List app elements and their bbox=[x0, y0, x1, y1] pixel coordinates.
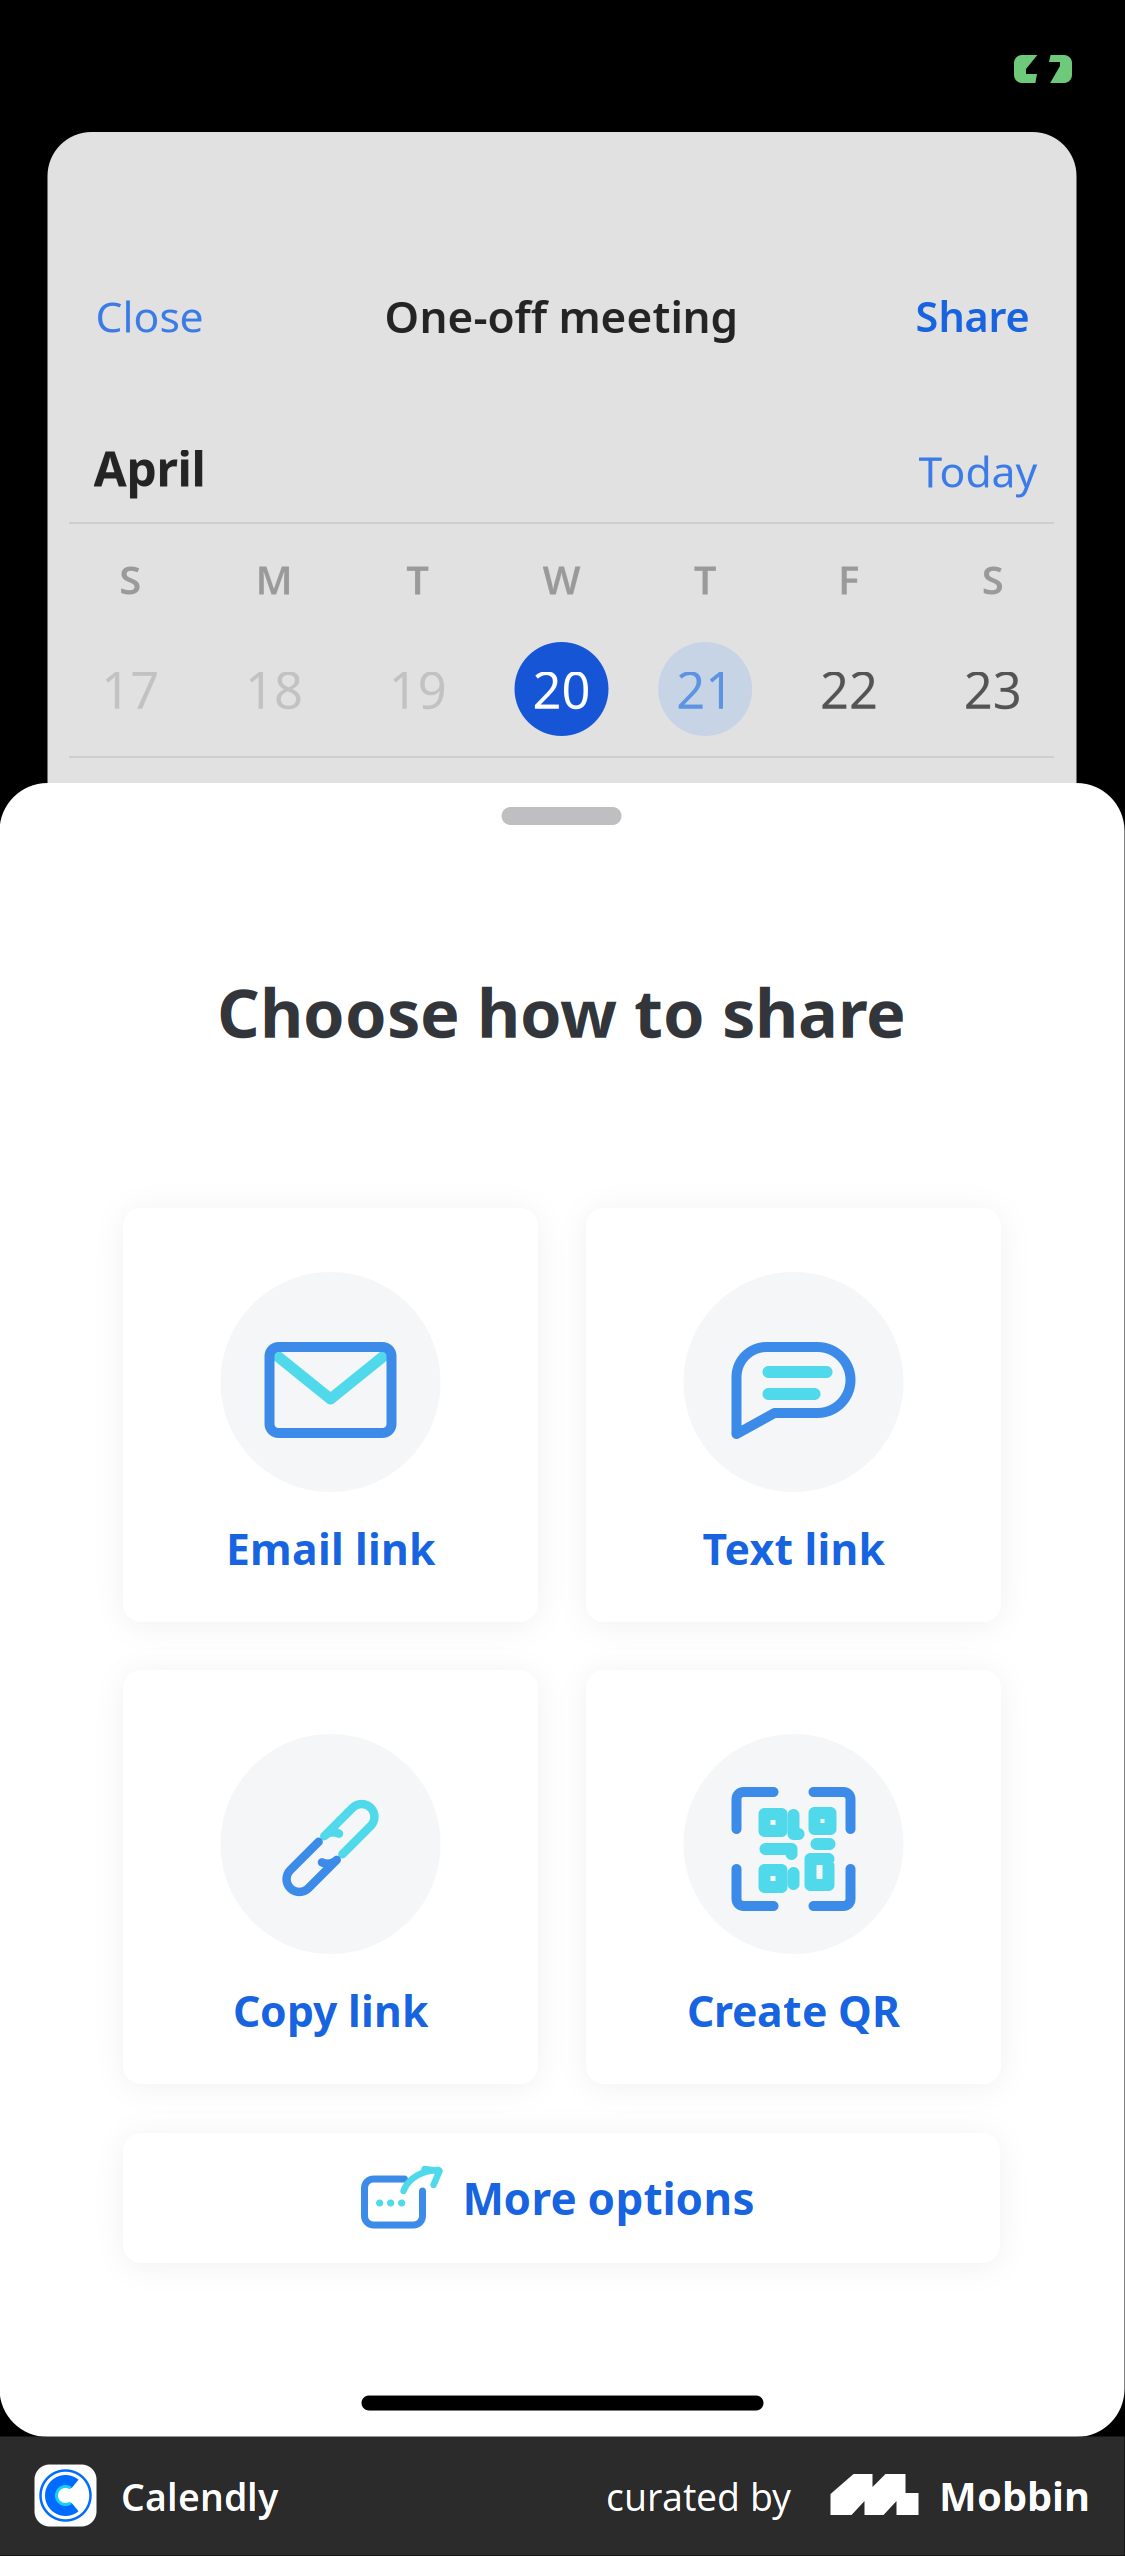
staticText: 20 bbox=[532, 655, 590, 723]
staticText: Choose how to share bbox=[217, 968, 906, 1056]
staticText: April bbox=[93, 436, 205, 500]
button[interactable]: Email link bbox=[123, 1208, 538, 1622]
button[interactable]: 19 bbox=[346, 639, 490, 739]
staticText: S bbox=[119, 552, 141, 605]
button[interactable]: Share bbox=[849, 281, 1029, 351]
button[interactable]: 18 bbox=[202, 639, 346, 739]
button[interactable]: 22 bbox=[777, 639, 921, 739]
staticText: Copy link bbox=[233, 1982, 428, 2039]
button[interactable]: Copy link bbox=[123, 1670, 538, 2084]
staticText: Create QR bbox=[687, 1982, 900, 2039]
staticText: Close bbox=[95, 288, 203, 344]
staticText: 17 bbox=[101, 655, 159, 723]
staticText: One-off meeting bbox=[384, 287, 738, 345]
staticText: curated by bbox=[606, 2472, 791, 2521]
staticText: S bbox=[982, 552, 1004, 605]
staticText: T bbox=[406, 552, 429, 605]
button[interactable]: 23 bbox=[921, 639, 1064, 739]
staticText: 23 bbox=[964, 655, 1022, 723]
staticText: More options bbox=[462, 2169, 754, 2227]
button[interactable]: Close bbox=[95, 281, 295, 351]
staticText: F bbox=[838, 552, 860, 605]
staticText: Email link bbox=[226, 1520, 435, 1577]
staticText: W bbox=[542, 552, 580, 605]
button[interactable]: 21 bbox=[633, 639, 777, 739]
button[interactable]: 20 bbox=[490, 639, 633, 739]
button[interactable]: Text link bbox=[586, 1208, 1001, 1622]
button[interactable]: More options bbox=[123, 2133, 1000, 2263]
staticText: 18 bbox=[245, 655, 303, 723]
staticText: M bbox=[256, 552, 293, 605]
staticText: Share bbox=[915, 289, 1029, 343]
staticText: T bbox=[694, 552, 717, 605]
button[interactable]: 17 bbox=[58, 639, 202, 739]
button[interactable]: Today bbox=[857, 436, 1037, 506]
staticText: Mobbin bbox=[939, 2469, 1090, 2522]
staticText: Calendly bbox=[121, 2472, 278, 2521]
button[interactable]: Create QR bbox=[586, 1670, 1001, 2084]
staticText: 19 bbox=[389, 655, 447, 723]
staticText: Text link bbox=[702, 1520, 884, 1577]
staticText: 22 bbox=[820, 655, 878, 723]
staticText: 21 bbox=[676, 655, 734, 723]
staticText: Today bbox=[918, 443, 1037, 499]
